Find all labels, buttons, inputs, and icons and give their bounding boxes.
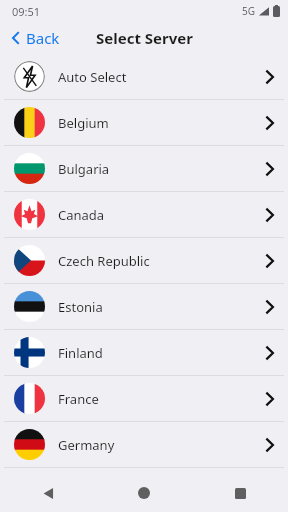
button[interactable]: Recent apps xyxy=(192,474,288,512)
staticText: Select Server xyxy=(96,28,193,48)
button[interactable]: France xyxy=(0,376,288,421)
staticText: France xyxy=(58,390,265,408)
staticText: Auto Select xyxy=(58,68,265,86)
button[interactable]: Czech Republic xyxy=(0,238,288,283)
button[interactable]: Estonia xyxy=(0,284,288,329)
staticText: Bulgaria xyxy=(58,160,265,178)
staticText: Back xyxy=(26,28,60,48)
staticText: Estonia xyxy=(58,298,265,316)
staticText: Czech Republic xyxy=(58,252,265,270)
staticText: Canada xyxy=(58,206,265,224)
button[interactable]: Bulgaria xyxy=(0,146,288,191)
button[interactable]: Back xyxy=(0,474,96,512)
staticText: 5G xyxy=(242,4,255,18)
staticText: Belgium xyxy=(58,114,265,132)
staticText: Finland xyxy=(58,344,265,362)
staticText: Germany xyxy=(58,436,265,454)
button[interactable]: Belgium xyxy=(0,100,288,145)
button[interactable]: Back xyxy=(0,24,68,52)
button[interactable]: Germany xyxy=(0,422,288,467)
button[interactable]: Home xyxy=(96,474,192,512)
staticText: 09:51 xyxy=(12,4,41,19)
button[interactable]: Canada xyxy=(0,192,288,237)
button[interactable]: Finland xyxy=(0,330,288,375)
button[interactable]: Auto Select xyxy=(0,54,288,99)
